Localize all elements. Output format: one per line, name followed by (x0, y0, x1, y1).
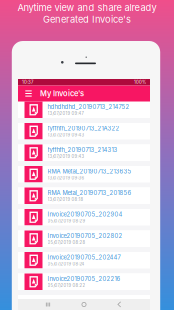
button[interactable]: RMA Metal_20190713_201856 (18, 187, 150, 209)
button[interactable]: Invoice20190705_202802 (18, 230, 150, 252)
staticText: RMA Metal_20190713_201856 (47, 189, 131, 196)
button[interactable]: RMA Metal_20190713_213635 (18, 166, 150, 187)
staticText: 13/07/2019 08:18 (47, 197, 83, 202)
staticText: fyffhfh_20190713_214313 (47, 146, 117, 153)
staticText: Anytime view and share already (17, 2, 156, 13)
staticText: 05/07/2019 08:24 (47, 262, 84, 267)
staticText: Generated Invoice's (43, 14, 131, 25)
button[interactable]: hdhdhdhd_20190713_214752 (18, 101, 150, 123)
button[interactable]: fyffhfh_20190713_214313 (18, 144, 150, 166)
button[interactable]: Invoice20190705_202447 (18, 252, 150, 273)
staticText: 13/07/2019 09:47 (47, 111, 83, 116)
staticText: 05/07/2019 08:22 (47, 283, 85, 288)
button[interactable]: Menu (22, 85, 35, 101)
button[interactable]: Invoice20190705_202216 (18, 273, 150, 295)
staticText: 13/07/2019 09:50 (47, 90, 84, 95)
staticText: Invoice20190705_202216 (47, 275, 120, 282)
button[interactable]: Recents (42, 299, 54, 310)
staticText: Invoice20190705_202904 (47, 211, 122, 218)
button[interactable]: Back (114, 299, 126, 310)
staticText: hdhdhdhd_20190713_215010 (47, 82, 128, 89)
staticText: 13/07/2019 09:43 (47, 154, 84, 159)
button[interactable]: fyffhfh_20190713_21A322 (18, 123, 150, 144)
staticText: My Invoice's (40, 89, 84, 98)
staticText: RMA Metal_20190713_213635 (47, 168, 131, 175)
staticText: 100% (134, 80, 146, 85)
staticText: 05/07/2019 08:28 (47, 240, 85, 245)
staticText: 10:37 (22, 80, 33, 85)
button[interactable]: Home (78, 299, 90, 310)
button[interactable]: hdhdhdhd_20190713_215010 (18, 80, 150, 101)
staticText: 13/07/2019 09:43 (47, 133, 84, 138)
staticText: Invoice20190705_202447 (47, 254, 120, 261)
staticText: Invoice20190705_202802 (47, 232, 122, 239)
staticText: fyffhfh_20190713_21A322 (47, 125, 119, 132)
staticText: 05/07/2019 08:29 (47, 219, 85, 224)
staticText: 13/07/2019 09:36 (47, 176, 84, 181)
button[interactable]: Invoice20190705_202904 (18, 209, 150, 230)
staticText: hdhdhdhd_20190713_214752 (47, 103, 129, 110)
